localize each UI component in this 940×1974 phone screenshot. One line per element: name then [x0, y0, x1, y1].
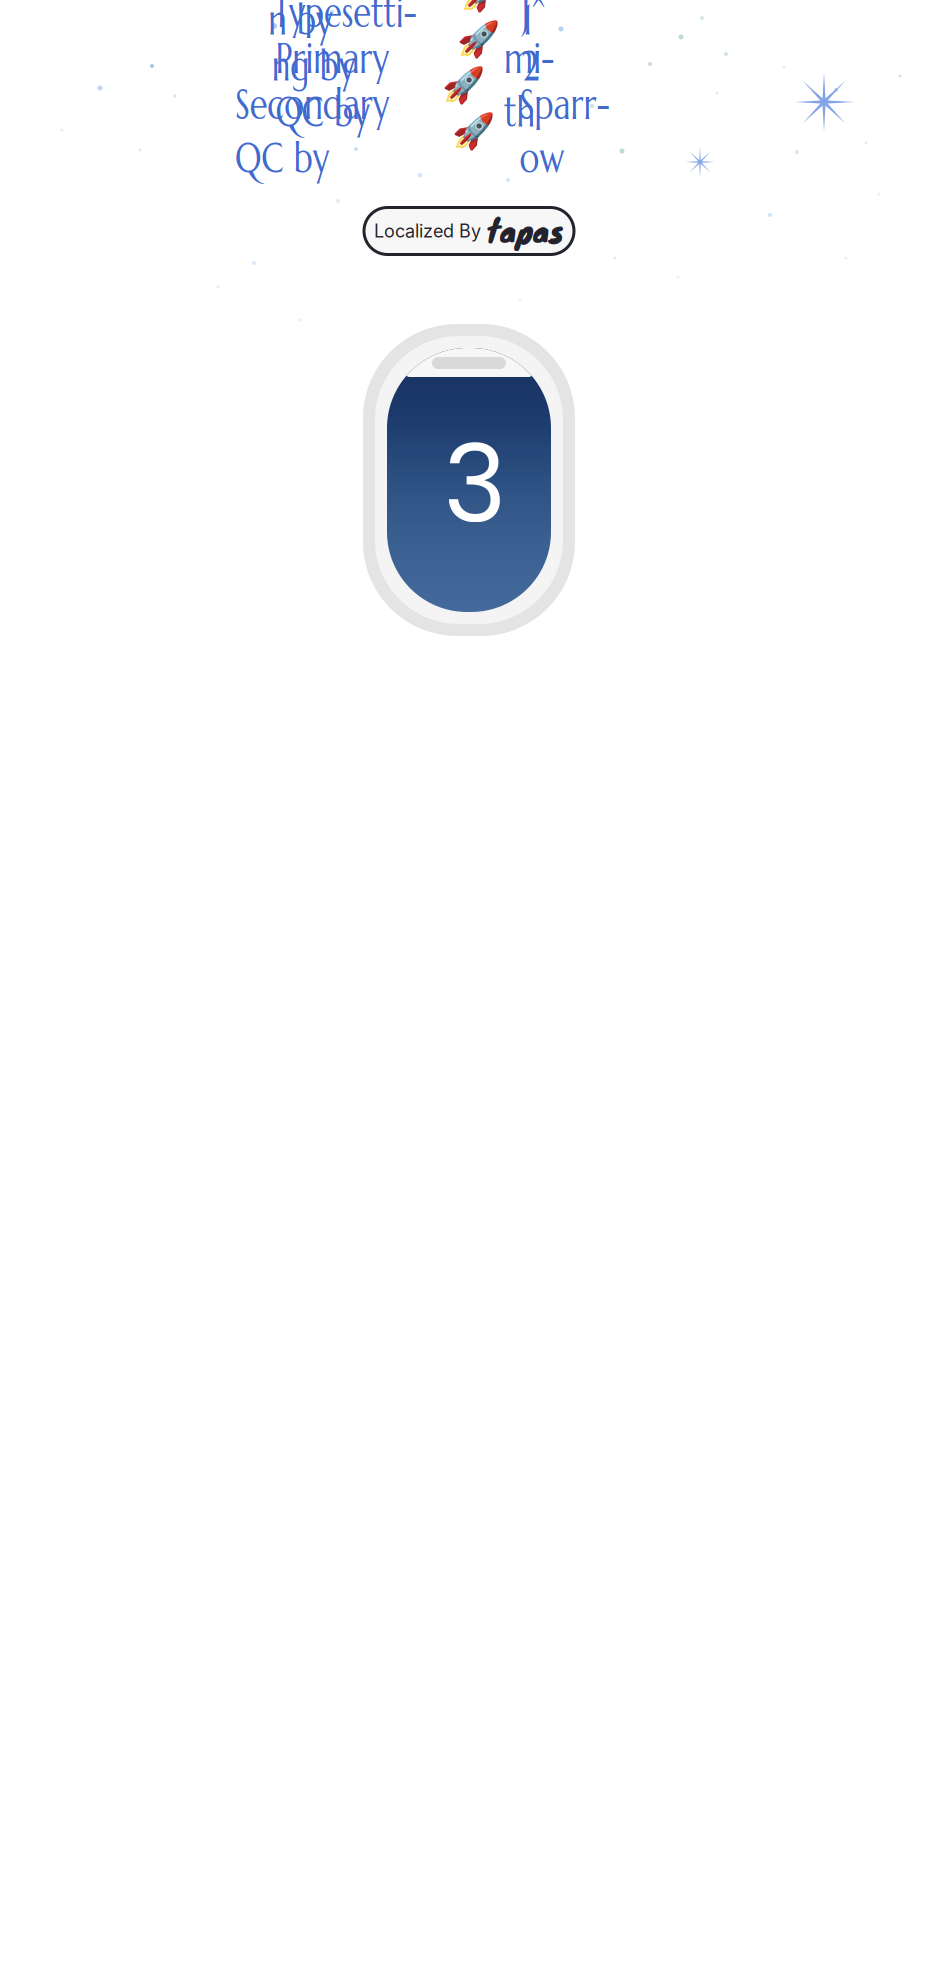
- staticText: Typesetting by: [250, 0, 439, 92]
- staticText: J^2: [518, 0, 550, 92]
- staticText: tapas: [487, 207, 564, 253]
- button[interactable]: Localized By: [364, 207, 574, 254]
- staticText: 🚀: [457, 19, 500, 59]
- staticText: 🚀: [442, 65, 485, 105]
- staticText: Primary QC by: [258, 31, 405, 138]
- staticText: Sparrow: [506, 77, 624, 184]
- staticText: 🚀: [451, 111, 494, 151]
- staticText: 3: [443, 409, 506, 559]
- staticText: Translation by: [245, 0, 447, 46]
- staticText: 🚀: [459, 0, 502, 13]
- staticText: Secondary QC by: [212, 77, 412, 184]
- staticText: Localized By: [374, 220, 481, 242]
- staticText: mith: [496, 31, 562, 138]
- staticText: J^1: [519, 0, 551, 46]
